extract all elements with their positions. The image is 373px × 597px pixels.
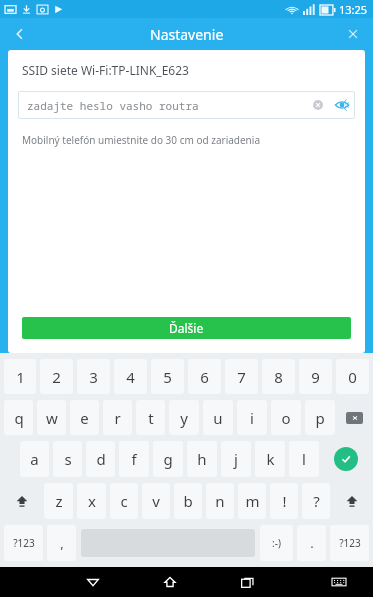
button[interactable]: k [255,441,285,477]
button[interactable]: . [297,525,326,561]
staticText: 0 [348,367,357,387]
staticText: d [96,449,106,469]
staticText: 2 [52,367,61,387]
staticText: ? [313,491,320,511]
staticText: ?123 [13,536,35,550]
button[interactable]: f [119,441,149,477]
staticText: 3 [89,367,98,387]
staticText: v [152,491,160,511]
staticText: Nastavenie [150,25,224,44]
button[interactable]: Close [333,18,373,50]
button[interactable]: Recent apps [223,567,271,597]
staticText: , [60,534,64,552]
button[interactable]: c [110,483,138,519]
button[interactable]: z [44,483,73,519]
staticText: u [213,408,223,428]
staticText: 5 [163,367,172,387]
button[interactable]: Enter [323,440,369,478]
staticText: n [215,491,225,511]
staticText: b [183,491,193,511]
button[interactable]: q [4,400,33,435]
staticText: y [180,408,188,428]
staticText: SSID siete Wi-Fi:TP-LINK_E623 [22,62,189,78]
staticText: 9 [311,367,320,387]
staticText: a [30,449,39,469]
button[interactable]: ?123 [4,525,43,561]
staticText: m [245,491,260,511]
staticText: z [55,491,63,511]
staticText: 7 [237,367,246,387]
button[interactable]: Keyboard [315,567,363,597]
staticText: 1 [16,367,25,387]
button[interactable]: 5 [151,359,184,394]
staticText: 6 [200,367,209,387]
button[interactable]: g [153,441,183,477]
button[interactable]: l [289,441,319,477]
staticText: f [131,449,137,469]
button[interactable]: Back [69,567,117,597]
button[interactable]: u [203,400,233,435]
button[interactable]: Home [146,567,194,597]
staticText: Ďalšie [169,320,204,336]
button[interactable]: ?123 [330,525,369,561]
staticText: g [163,449,173,469]
button[interactable]: e [70,400,99,435]
button[interactable]: Ďalšie [22,317,351,339]
button[interactable]: 7 [225,359,258,394]
button[interactable]: i [237,400,267,435]
button[interactable]: Show password [329,92,355,118]
staticText: Mobilný telefón umiestnite do 30 cm od z… [22,133,260,147]
button[interactable]: 0 [336,359,369,394]
button[interactable]: j [221,441,251,477]
staticText: w [46,408,58,428]
button[interactable]: a [20,441,49,477]
staticText: e [80,408,89,428]
button[interactable]: Back [0,18,40,50]
staticText: j [234,449,238,469]
staticText: o [281,408,291,428]
staticText: 4 [126,367,135,387]
button[interactable]: Clear text [307,94,329,116]
button[interactable]: Backspace [339,399,369,436]
button[interactable]: p [305,400,335,435]
button[interactable]: d [86,441,115,477]
button[interactable]: x [77,483,106,519]
button[interactable]: 9 [299,359,332,394]
button[interactable]: b [174,483,202,519]
button[interactable]: t [136,400,165,435]
staticText: ! [282,491,287,511]
button[interactable]: v [142,483,170,519]
button[interactable]: ? [302,483,330,519]
staticText: r [114,408,121,428]
staticText: ?123 [339,536,361,550]
button[interactable]: , [47,525,76,561]
button[interactable]: 1 [4,359,36,394]
button[interactable]: 8 [262,359,295,394]
button[interactable]: :-) [260,525,293,561]
button[interactable]: 6 [188,359,221,394]
staticText: . [310,534,314,552]
staticText: :-) [272,536,281,550]
staticText: i [250,408,254,428]
button[interactable]: w [37,400,66,435]
button[interactable]: y [169,400,199,435]
button[interactable]: 2 [40,359,73,394]
button[interactable]: h [187,441,217,477]
button[interactable]: o [271,400,301,435]
staticText: 8 [274,367,283,387]
button[interactable]: 4 [114,359,147,394]
staticText: 13:25 [339,2,368,17]
button[interactable]: s [53,441,82,477]
button[interactable]: zadajte heslo vasho routra [18,91,355,119]
button[interactable]: n [206,483,234,519]
button[interactable]: r [103,400,132,435]
button[interactable]: Shift [334,482,369,520]
button[interactable]: Shift [4,482,40,520]
staticText: t [148,408,154,428]
staticText: l [302,449,306,469]
staticText: k [266,449,275,469]
button[interactable]: 3 [77,359,110,394]
button[interactable]: ! [270,483,298,519]
button[interactable]: m [238,483,266,519]
